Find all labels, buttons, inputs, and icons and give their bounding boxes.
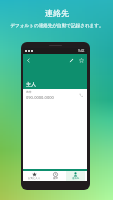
button[interactable]: Favorite: [76, 55, 86, 65]
staticText: 090-0000-0000: [26, 95, 54, 100]
button[interactable]: お気に入り: [25, 171, 44, 181]
staticText: 主人: [26, 81, 36, 87]
button[interactable]: Edit: [66, 55, 76, 65]
button[interactable]: Back: [23, 55, 33, 65]
staticText: お気に入り: [28, 177, 41, 180]
staticText: 携帯: [26, 90, 32, 94]
button[interactable]: 携帯: [23, 89, 87, 100]
staticText: 履歴: [53, 177, 58, 180]
button[interactable]: 連絡先: [66, 171, 85, 181]
staticText: 9:42: [78, 49, 85, 53]
staticText: 連絡先: [45, 8, 69, 18]
staticText: デフォルトの連絡先が自動で記録されます。: [10, 23, 104, 29]
button[interactable]: 履歴: [46, 171, 65, 181]
staticText: 連絡先: [72, 177, 80, 180]
button[interactable]: Call: [77, 91, 84, 98]
